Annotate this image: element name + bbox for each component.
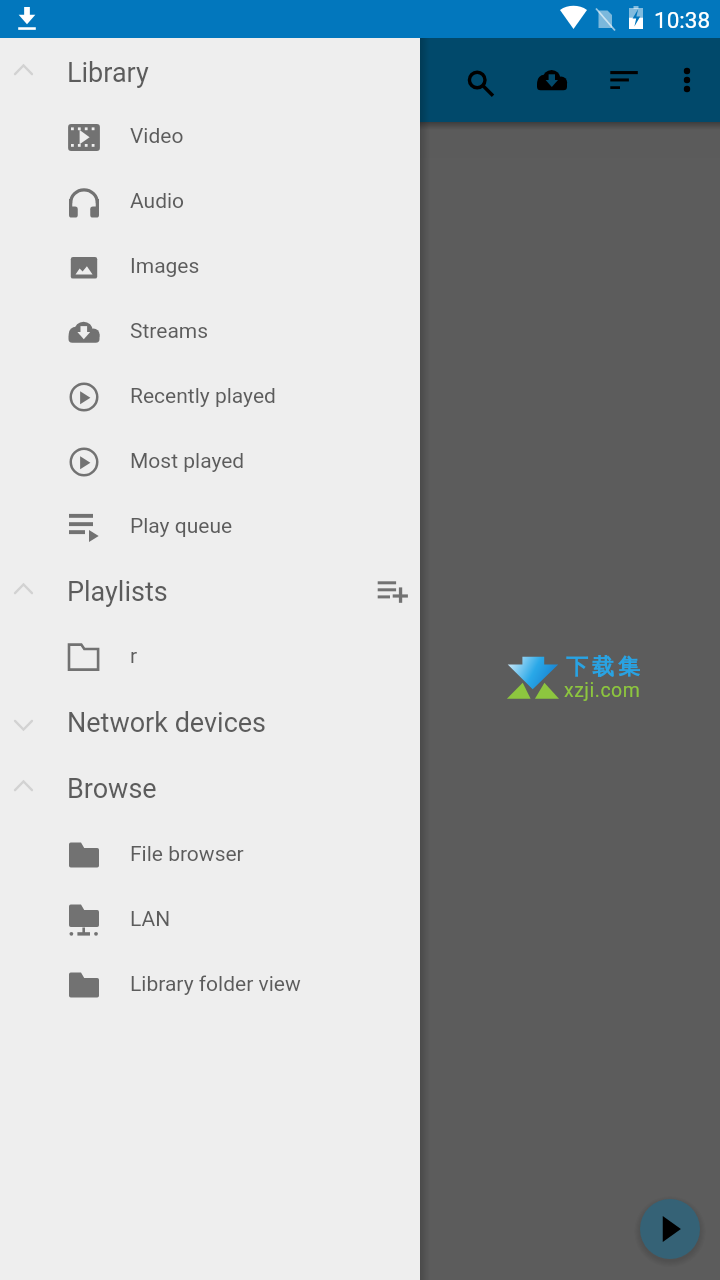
staticText: Play queue <box>130 514 233 539</box>
staticText: Network devices <box>67 707 267 739</box>
staticText: Video <box>130 124 184 149</box>
staticText: 10:38 <box>654 7 711 33</box>
button[interactable]: Audio <box>0 169 420 234</box>
button[interactable]: File browser <box>0 822 420 887</box>
staticText: Browse <box>67 773 157 805</box>
staticText: Streams <box>130 319 209 344</box>
button[interactable]: Search <box>446 38 510 122</box>
button[interactable]: Play <box>640 1199 700 1259</box>
staticText: Images <box>130 254 200 279</box>
staticText: 下载集 <box>564 653 642 681</box>
staticText: File browser <box>130 842 244 867</box>
staticText: Audio <box>130 189 185 214</box>
button[interactable]: Most played <box>0 429 420 494</box>
staticText: xzji.com <box>564 679 641 702</box>
button[interactable]: Play queue <box>0 494 420 559</box>
button[interactable]: Video <box>0 104 420 169</box>
staticText: Library folder view <box>130 972 301 997</box>
staticText: Playlists <box>67 576 168 608</box>
button[interactable]: LAN <box>0 887 420 952</box>
button[interactable]: Sort <box>592 38 656 122</box>
button[interactable]: Browse <box>0 756 420 821</box>
button[interactable]: More options <box>655 38 719 122</box>
button[interactable]: Network devices <box>0 690 420 755</box>
staticText: r <box>130 644 138 669</box>
button[interactable]: r <box>0 624 420 689</box>
staticText: Library <box>67 57 149 89</box>
button[interactable]: Playlists <box>0 559 420 624</box>
button[interactable]: Recently played <box>0 364 420 429</box>
button[interactable]: Library folder view <box>0 952 420 1017</box>
button[interactable]: Streams <box>0 299 420 364</box>
button[interactable]: Downloads <box>520 38 584 122</box>
staticText: LAN <box>130 907 171 932</box>
staticText: Most played <box>130 449 245 474</box>
button[interactable]: Add playlist <box>369 568 417 616</box>
button[interactable]: Library <box>0 40 420 105</box>
staticText: Recently played <box>130 384 276 409</box>
button[interactable]: Images <box>0 234 420 299</box>
